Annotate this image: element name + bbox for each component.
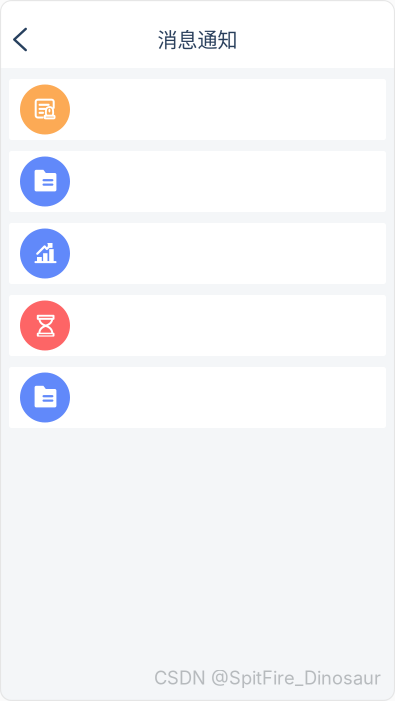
staticText: 消息通知 (157, 24, 237, 53)
button[interactable]: 统计 (9, 223, 386, 284)
button[interactable]: 待办 (9, 295, 386, 356)
button[interactable]: 通知 (9, 79, 386, 140)
button[interactable]: Back (0, 17, 42, 61)
staticText: CSDN @SpitFire_Dinosaur (154, 667, 381, 689)
button[interactable]: 资料 (9, 367, 386, 428)
button[interactable]: 文件 (9, 151, 386, 212)
